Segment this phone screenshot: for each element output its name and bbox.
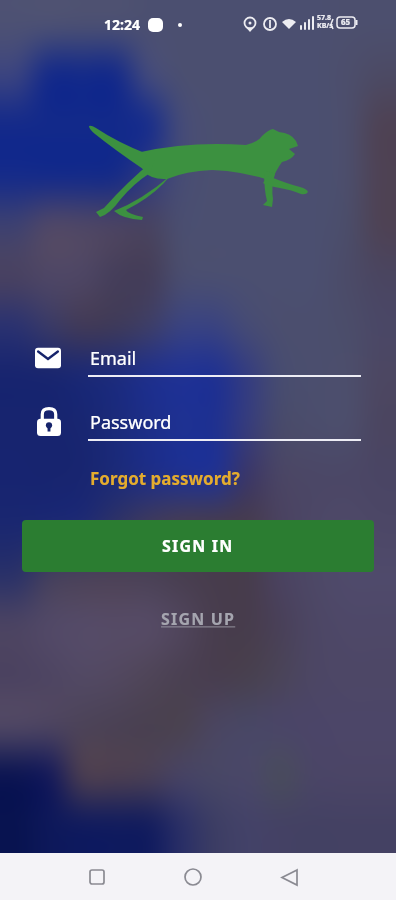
button[interactable] [37, 408, 61, 436]
staticText: 65 [341, 16, 351, 27]
button[interactable]: Forgot password? [90, 467, 240, 490]
button[interactable]: SIGN UP [161, 608, 236, 630]
staticText: Email [90, 346, 137, 371]
button[interactable] [163, 855, 223, 899]
staticText: Password [90, 410, 172, 435]
button[interactable] [259, 855, 319, 899]
button[interactable] [67, 855, 127, 899]
button[interactable] [35, 345, 61, 371]
button[interactable]: SIGN IN [22, 520, 374, 572]
staticText: KB/s [317, 21, 333, 31]
staticText: SIGN IN [162, 535, 234, 557]
staticText: 12:24 [104, 15, 140, 34]
staticText: 57.8 [317, 13, 331, 23]
